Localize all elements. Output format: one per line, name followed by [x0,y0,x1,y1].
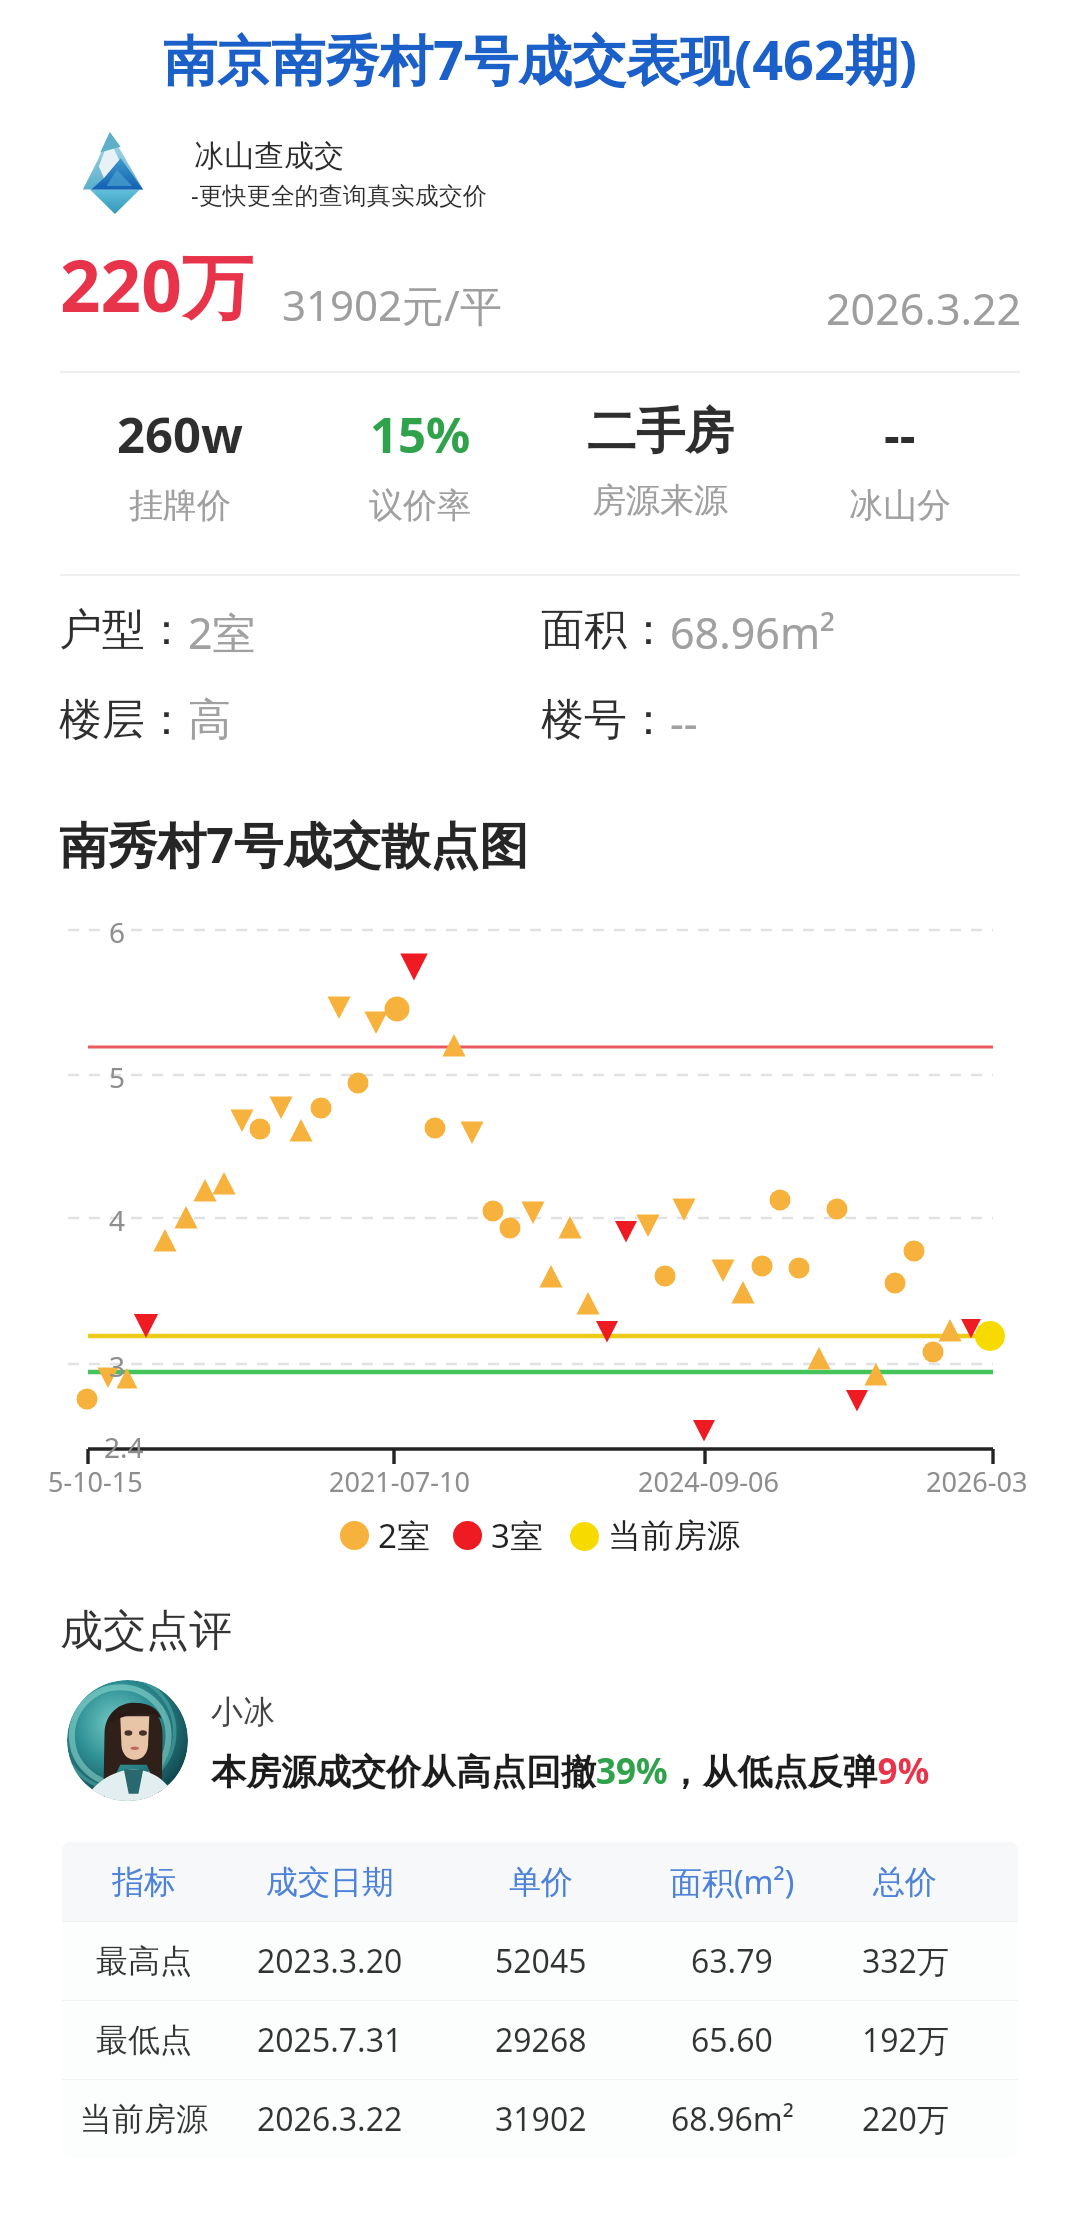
staticText: 冰山查成交 [194,137,344,175]
button[interactable]: 楼层： [59,693,231,747]
staticText: -- [884,401,916,468]
staticText: 成交日期 [266,1862,394,1902]
staticText: 当前房源 [608,1515,740,1557]
staticText: 成交点评 [60,1604,232,1658]
staticText: 15% [370,401,471,468]
staticText: 2025.7.31 [257,2018,403,2062]
staticText: 4 [109,1201,126,1239]
staticText: 29268 [495,2018,587,2062]
button[interactable]: 2室 [340,1513,430,1558]
staticText: 房源来源 [592,479,728,522]
staticText: 68.96m² [670,603,836,662]
staticText: 220万 [60,236,253,333]
button[interactable]: 面积： [541,603,836,662]
staticText: 260w [117,401,244,468]
staticText: 面积(m²) [670,1860,795,1904]
staticText: 南京南秀村7号成交表现(462期) [163,22,918,96]
staticText: 2室 [378,1513,430,1558]
staticText: 当前房源 [80,2099,208,2139]
button[interactable]: 最低点 [62,2001,1018,2079]
staticText: 31902 [495,2097,587,2141]
staticText: 指标 [112,1862,176,1902]
button[interactable]: 二手房 [540,401,780,522]
staticText: 220万 [862,2097,949,2141]
staticText: 2026.3.22 [257,2097,403,2141]
staticText: 楼号： [541,693,670,747]
button[interactable]: 冰山查成交 logo [81,132,145,214]
button[interactable]: 户型： [59,603,256,662]
staticText: 2.4 [104,1428,144,1466]
staticText: 冰山分 [849,484,951,527]
staticText: 3室 [491,1513,543,1558]
staticText: 议价率 [369,484,471,527]
staticText: -- [670,693,698,752]
button[interactable]: 最高点 [62,1922,1018,2000]
button[interactable]: -- [780,401,1020,527]
staticText: 2室 [188,603,256,662]
staticText: 2026.3.22 [826,279,1022,338]
staticText: 最高点 [96,1941,192,1981]
button[interactable]: 260w [60,401,300,527]
staticText: 3 [109,1347,126,1385]
staticText: 挂牌价 [129,484,231,527]
staticText: 332万 [862,1939,949,1983]
staticText: 192万 [862,2018,949,2062]
staticText: 5 [109,1058,126,1096]
staticText: 单价 [509,1862,573,1902]
staticText: 65.60 [691,2018,773,2062]
staticText: 本房源成交价从高点回撤39%，从低点反弹9% [211,1747,930,1795]
staticText: 2026-03 [926,1463,1028,1500]
staticText: 户型： [59,603,188,657]
staticText: 31902元/平 [282,276,502,333]
staticText: 63.79 [691,1939,773,1983]
button[interactable]: 当前房源 [62,2080,1018,2158]
staticText: 5-10-15 [48,1463,143,1500]
button[interactable]: 当前房源 [570,1515,740,1557]
staticText: 二手房 [587,401,734,463]
staticText: 面积： [541,603,670,657]
staticText: 52045 [495,1939,587,1983]
button[interactable]: 15% [300,401,540,527]
button[interactable]: 3室 [453,1513,543,1558]
staticText: 6 [109,913,126,951]
staticText: 最低点 [96,2020,192,2060]
staticText: 南秀村7号成交散点图 [59,811,529,878]
staticText: 楼层： [59,693,188,747]
staticText: 2023.3.20 [257,1939,403,1983]
button[interactable]: 小冰 头像 [67,1680,188,1801]
staticText: 小冰 [211,1692,275,1732]
staticText: 高 [188,693,231,747]
staticText: 总价 [873,1862,937,1902]
staticText: 2024-09-06 [638,1463,779,1500]
staticText: -更快更全的查询真实成交价 [191,178,487,211]
staticText: 68.96m² [671,2097,794,2141]
button[interactable]: 楼号： [541,693,698,752]
staticText: 2021-07-10 [329,1463,470,1500]
